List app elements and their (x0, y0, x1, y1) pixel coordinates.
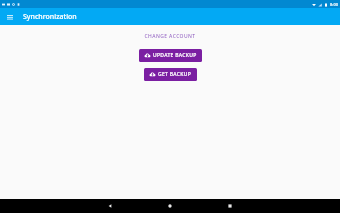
staticText: UPDATE BACKUP (153, 52, 197, 59)
button[interactable]: CHANGE ACCOUNT (136, 30, 204, 43)
staticText: Synchronization (23, 12, 77, 22)
staticText: GET BACKUP (158, 71, 192, 78)
button[interactable]: GET BACKUP (144, 68, 197, 81)
button[interactable]: Home (140, 199, 200, 213)
button[interactable]: Open navigation menu (4, 11, 16, 23)
button[interactable]: UPDATE BACKUP (139, 49, 202, 62)
staticText: CHANGE ACCOUNT (144, 33, 196, 40)
staticText: 8:00 (330, 2, 338, 7)
button[interactable]: Recent apps (200, 199, 260, 213)
button[interactable]: Back (80, 199, 140, 213)
